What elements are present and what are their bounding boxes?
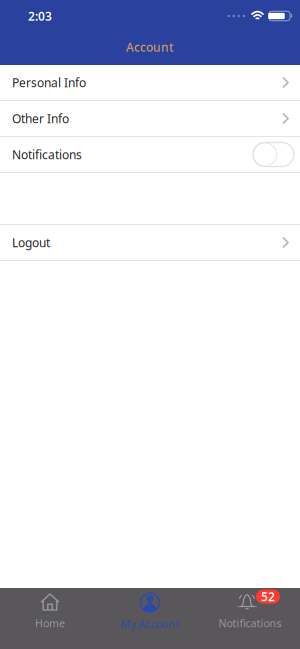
staticText: Personal Info: [12, 74, 86, 90]
staticText: Home: [35, 616, 65, 630]
button[interactable]: Home: [0, 588, 100, 645]
button[interactable]: Logout: [0, 225, 300, 261]
staticText: Other Info: [12, 110, 69, 126]
button[interactable]: Personal Info: [0, 65, 300, 101]
staticText: Logout: [12, 234, 50, 250]
staticText: Account: [126, 39, 174, 55]
button[interactable]: Other Info: [0, 101, 300, 137]
staticText: My Account: [120, 617, 179, 631]
staticText: 2:03: [28, 8, 52, 24]
button[interactable]: Notifications: [0, 137, 300, 173]
staticText: Notifications: [12, 146, 82, 162]
staticText: Notifications: [218, 616, 281, 630]
staticText: 52: [261, 588, 275, 604]
button[interactable]: My Account: [100, 588, 200, 645]
button[interactable]: 52: [200, 588, 300, 645]
